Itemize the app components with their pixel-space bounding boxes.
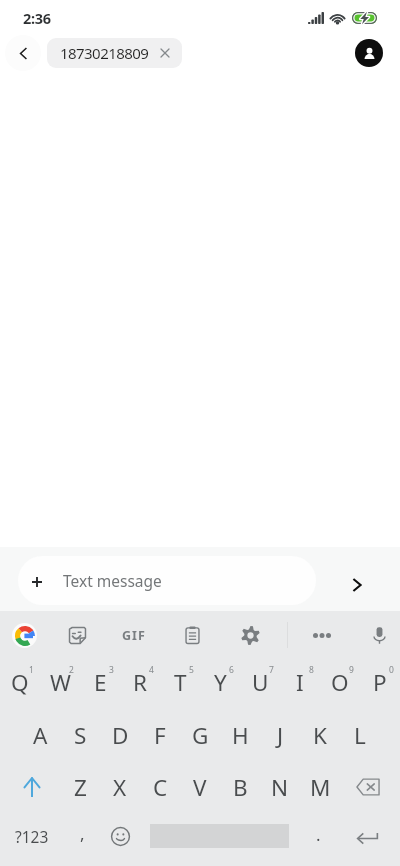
staticText: A xyxy=(33,720,48,751)
button[interactable]: ?123 xyxy=(0,811,65,861)
button[interactable]: S xyxy=(60,710,100,760)
staticText: Y xyxy=(214,667,227,698)
button[interactable]: T xyxy=(160,657,200,707)
staticText: R xyxy=(133,667,147,698)
button[interactable]: Shift xyxy=(0,762,60,812)
button[interactable]: X xyxy=(100,762,140,812)
staticText: 2:36 xyxy=(23,8,51,28)
button[interactable]: E xyxy=(80,657,120,707)
button[interactable]: 18730218809 xyxy=(47,38,182,68)
staticText: 8 xyxy=(309,664,314,676)
button[interactable]: A xyxy=(20,710,60,760)
button[interactable]: GIF xyxy=(112,613,156,657)
staticText: W xyxy=(50,667,71,698)
button[interactable]: More options xyxy=(300,613,344,657)
button[interactable]: N xyxy=(260,762,300,812)
staticText: Q xyxy=(11,667,29,698)
button[interactable]: K xyxy=(300,710,340,760)
button[interactable]: R xyxy=(120,657,160,707)
button[interactable]: O xyxy=(320,657,360,707)
button[interactable]: D xyxy=(100,710,140,760)
button[interactable]: H xyxy=(220,710,260,760)
button[interactable]: G xyxy=(180,710,220,760)
staticText: L xyxy=(354,720,366,751)
button[interactable]: Emoji xyxy=(100,811,140,861)
button[interactable]: J xyxy=(260,710,300,760)
button[interactable]: Google xyxy=(2,613,46,657)
staticText: H xyxy=(232,720,249,751)
staticText: N xyxy=(271,772,289,803)
staticText: ?123 xyxy=(15,826,49,847)
staticText: GIF xyxy=(122,627,146,644)
staticText: F xyxy=(154,720,166,751)
staticText: P xyxy=(373,667,387,698)
button[interactable]: Enter xyxy=(337,813,397,863)
staticText: . xyxy=(316,823,321,846)
button[interactable]: M xyxy=(300,762,340,812)
button[interactable]: Space xyxy=(140,811,300,861)
staticText: 2 xyxy=(69,664,74,676)
staticText: T xyxy=(174,667,187,698)
staticText: G xyxy=(192,720,209,751)
button[interactable]: , xyxy=(64,811,100,861)
button[interactable]: F xyxy=(140,710,180,760)
button[interactable]: C xyxy=(140,762,180,812)
staticText: 5 xyxy=(189,664,194,676)
staticText: M xyxy=(310,772,331,803)
staticText: Text message xyxy=(63,570,162,591)
staticText: 1 xyxy=(29,664,34,676)
staticText: E xyxy=(94,667,107,698)
button[interactable]: U xyxy=(240,657,280,707)
button[interactable]: Voice input xyxy=(357,613,400,657)
button[interactable]: Contact details xyxy=(355,39,383,67)
button[interactable]: B xyxy=(220,762,260,812)
staticText: K xyxy=(313,720,327,751)
staticText: O xyxy=(331,667,349,698)
staticText: C xyxy=(153,772,168,803)
button[interactable]: L xyxy=(340,710,380,760)
button[interactable]: Back xyxy=(5,35,41,71)
staticText: 0 xyxy=(389,664,394,676)
button[interactable]: V xyxy=(180,762,220,812)
staticText: J xyxy=(277,720,284,751)
staticText: 6 xyxy=(229,664,234,676)
button[interactable]: W xyxy=(40,657,80,707)
staticText: 3 xyxy=(109,664,114,676)
staticText: S xyxy=(74,720,87,751)
button[interactable]: Y xyxy=(200,657,240,707)
staticText: D xyxy=(112,720,129,751)
staticText: U xyxy=(252,667,269,698)
staticText: X xyxy=(113,772,127,803)
staticText: I xyxy=(296,667,304,698)
button[interactable]: Stickers xyxy=(55,613,99,657)
staticText: , xyxy=(80,822,85,845)
button[interactable]: . xyxy=(299,811,337,861)
staticText: V xyxy=(193,772,207,803)
button[interactable]: I xyxy=(280,657,320,707)
staticText: 9 xyxy=(349,664,354,676)
button[interactable]: Backspace xyxy=(340,762,400,812)
button[interactable]: Q xyxy=(0,657,40,707)
button[interactable]: Text message xyxy=(18,556,316,605)
button[interactable]: Send xyxy=(335,563,379,607)
staticText: B xyxy=(233,772,248,803)
staticText: 18730218809 xyxy=(60,43,149,63)
staticText: Z xyxy=(74,772,87,803)
button[interactable]: Clipboard xyxy=(170,613,214,657)
staticText: 7 xyxy=(269,664,274,676)
button[interactable]: Z xyxy=(60,762,100,812)
button[interactable]: P xyxy=(360,657,400,707)
staticText: 4 xyxy=(149,664,154,676)
button[interactable]: Settings xyxy=(228,613,272,657)
